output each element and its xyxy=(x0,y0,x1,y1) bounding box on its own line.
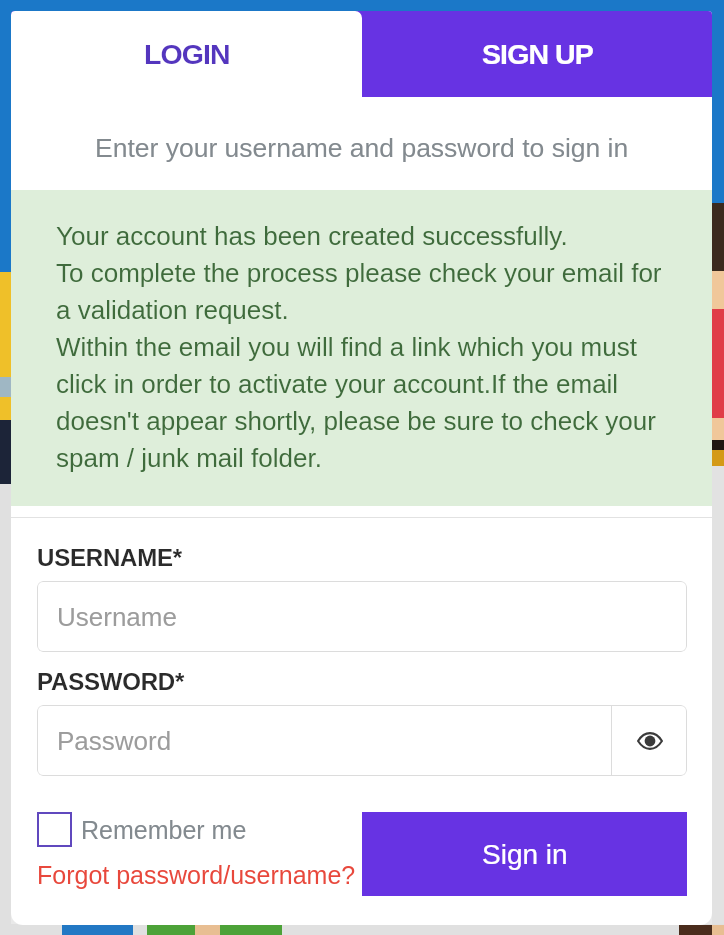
staticText: Username xyxy=(57,602,177,631)
staticText: Password xyxy=(57,726,172,755)
staticText: USERNAME* xyxy=(37,544,182,571)
button[interactable]: SIGN UP xyxy=(362,11,712,97)
staticText: SIGN UP xyxy=(482,38,593,70)
staticText: Enter your username and password to sign… xyxy=(95,133,629,163)
staticText: Sign in xyxy=(482,839,568,870)
button[interactable]: Sign in xyxy=(362,812,687,896)
staticText: Your account has been created successful… xyxy=(56,221,676,472)
button[interactable]: LOGIN xyxy=(11,11,362,97)
staticText: LOGIN xyxy=(144,38,230,70)
staticText: PASSWORD* xyxy=(37,668,185,695)
button[interactable]: Show password xyxy=(612,705,687,776)
button[interactable]: Username xyxy=(37,581,687,652)
button[interactable]: Remember me xyxy=(37,812,247,847)
button[interactable]: Password xyxy=(37,705,611,776)
staticText: Remember me xyxy=(81,816,247,844)
button[interactable]: Forgot password/username? xyxy=(37,861,356,889)
